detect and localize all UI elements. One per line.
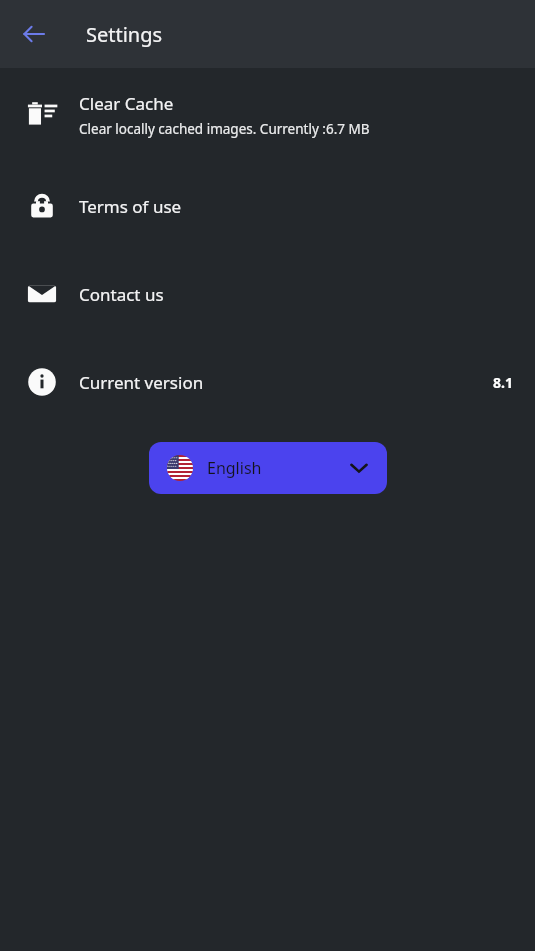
button[interactable]: Back	[14, 14, 54, 54]
staticText: Settings	[86, 21, 163, 48]
staticText: Clear locally cached images. Currently :…	[79, 120, 370, 138]
staticText: Current version	[79, 371, 204, 394]
staticText: Contact us	[79, 283, 164, 306]
button[interactable]: English	[149, 442, 387, 494]
staticText: Terms of use	[79, 195, 182, 218]
staticText: English	[207, 457, 262, 479]
button[interactable]: Contact us	[0, 266, 535, 322]
button[interactable]: Terms of use	[0, 178, 535, 234]
button[interactable]: Clear Cache	[0, 86, 535, 144]
staticText: 8.1	[493, 373, 513, 392]
button[interactable]: Current version	[0, 354, 535, 410]
staticText: Clear Cache	[79, 92, 174, 115]
